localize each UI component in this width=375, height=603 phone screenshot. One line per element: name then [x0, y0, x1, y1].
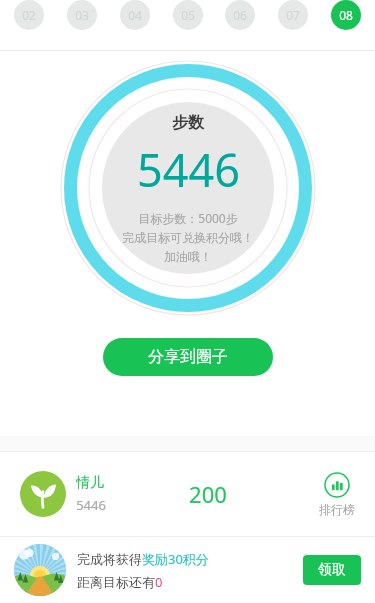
button[interactable]: 07 [278, 0, 308, 30]
staticText: 距离目标还有0 [77, 573, 163, 591]
button[interactable]: 02 [14, 0, 44, 30]
button[interactable]: 03 [67, 0, 97, 30]
staticText: 情儿 [76, 474, 104, 492]
staticText: 05 [181, 7, 195, 23]
staticText: 200 [189, 479, 227, 509]
staticText: 排行榜 [319, 502, 355, 517]
staticText: 分享到圈子 [148, 347, 228, 367]
button[interactable]: 分享到圈子 [103, 338, 273, 376]
staticText: 07 [286, 7, 300, 23]
staticText: 03 [75, 7, 89, 23]
button[interactable]: 06 [225, 0, 255, 30]
button[interactable]: 排行榜 [319, 472, 355, 517]
staticText: 完成目标可兑换积分哦！ [122, 230, 254, 245]
staticText: 步数 [172, 113, 204, 133]
staticText: 5446 [76, 496, 106, 514]
staticText: 02 [22, 7, 36, 23]
button[interactable]: 情儿 [20, 471, 106, 517]
button[interactable]: 04 [120, 0, 150, 30]
staticText: 5446 [137, 139, 240, 200]
staticText: 领取 [318, 561, 346, 579]
staticText: 04 [128, 7, 142, 23]
staticText: 目标步数：5000步 [138, 210, 238, 226]
staticText: 06 [233, 7, 247, 23]
staticText: 加油哦！ [164, 249, 212, 264]
button[interactable]: 领取 [303, 555, 361, 585]
staticText: 完成将获得奖励30积分 [77, 550, 209, 568]
button[interactable]: 05 [173, 0, 203, 30]
staticText: 08 [339, 7, 353, 23]
button[interactable]: 08 [331, 0, 361, 30]
